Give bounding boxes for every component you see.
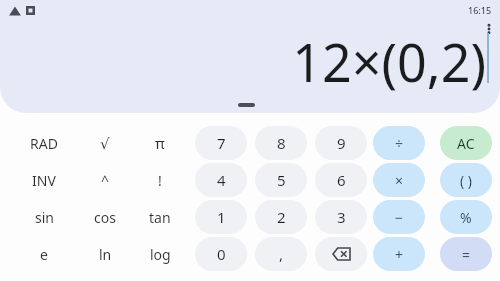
staticText: =: [462, 245, 471, 264]
staticText: 5: [277, 170, 286, 190]
button[interactable]: 2: [255, 200, 307, 234]
staticText: sin: [35, 208, 54, 227]
button[interactable]: √: [78, 126, 132, 160]
staticText: !: [158, 171, 162, 190]
button[interactable]: log: [133, 237, 187, 271]
staticText: ^: [101, 171, 110, 190]
button[interactable]: sin: [17, 200, 71, 234]
staticText: 1: [217, 207, 226, 227]
button[interactable]: RAD: [17, 126, 71, 160]
staticText: 6: [337, 170, 346, 190]
button[interactable]: cos: [78, 200, 132, 234]
button[interactable]: ^: [78, 163, 132, 197]
staticText: ( ): [460, 171, 473, 190]
staticText: 0: [217, 244, 226, 264]
button[interactable]: 6: [315, 163, 367, 197]
staticText: √: [100, 135, 110, 152]
staticText: log: [150, 245, 171, 264]
button[interactable]: ( ): [440, 163, 492, 197]
button[interactable]: −: [373, 200, 425, 234]
staticText: 2: [277, 207, 286, 227]
button[interactable]: !: [133, 163, 187, 197]
button[interactable]: ×: [373, 163, 425, 197]
staticText: AC: [457, 134, 475, 153]
button[interactable]: INV: [17, 163, 71, 197]
button[interactable]: Expand history: [238, 103, 255, 107]
button[interactable]: ln: [78, 237, 132, 271]
button[interactable]: 1: [195, 200, 247, 234]
staticText: ,: [279, 244, 284, 264]
staticText: 16:15: [468, 4, 492, 16]
staticText: 7: [217, 133, 226, 153]
staticText: tan: [149, 208, 171, 227]
staticText: 4: [217, 170, 226, 190]
staticText: cos: [94, 208, 116, 227]
button[interactable]: tan: [133, 200, 187, 234]
button[interactable]: 8: [255, 126, 307, 160]
staticText: 8: [277, 133, 286, 153]
staticText: ×: [395, 171, 404, 190]
staticText: 12×(0,2): [292, 26, 486, 97]
button[interactable]: 7: [195, 126, 247, 160]
button[interactable]: More options: [478, 18, 500, 40]
button[interactable]: ÷: [373, 126, 425, 160]
button[interactable]: AC: [440, 126, 492, 160]
staticText: ln: [99, 245, 112, 264]
button[interactable]: 3: [315, 200, 367, 234]
staticText: −: [395, 208, 404, 227]
button[interactable]: %: [440, 200, 492, 234]
button[interactable]: =: [440, 237, 492, 271]
button[interactable]: π: [133, 126, 187, 160]
button[interactable]: 4: [195, 163, 247, 197]
button[interactable]: ,: [255, 237, 307, 271]
button[interactable]: 0: [195, 237, 247, 271]
staticText: e: [40, 245, 48, 264]
staticText: %: [460, 208, 472, 227]
staticText: RAD: [30, 134, 58, 153]
staticText: ÷: [395, 134, 404, 153]
staticText: π: [155, 133, 165, 153]
staticText: +: [395, 245, 404, 264]
button[interactable]: Backspace: [315, 237, 367, 271]
staticText: 3: [337, 207, 346, 227]
button[interactable]: +: [373, 237, 425, 271]
button[interactable]: e: [17, 237, 71, 271]
staticText: 9: [337, 133, 346, 153]
staticText: INV: [32, 171, 56, 190]
button[interactable]: 5: [255, 163, 307, 197]
button[interactable]: 9: [315, 126, 367, 160]
